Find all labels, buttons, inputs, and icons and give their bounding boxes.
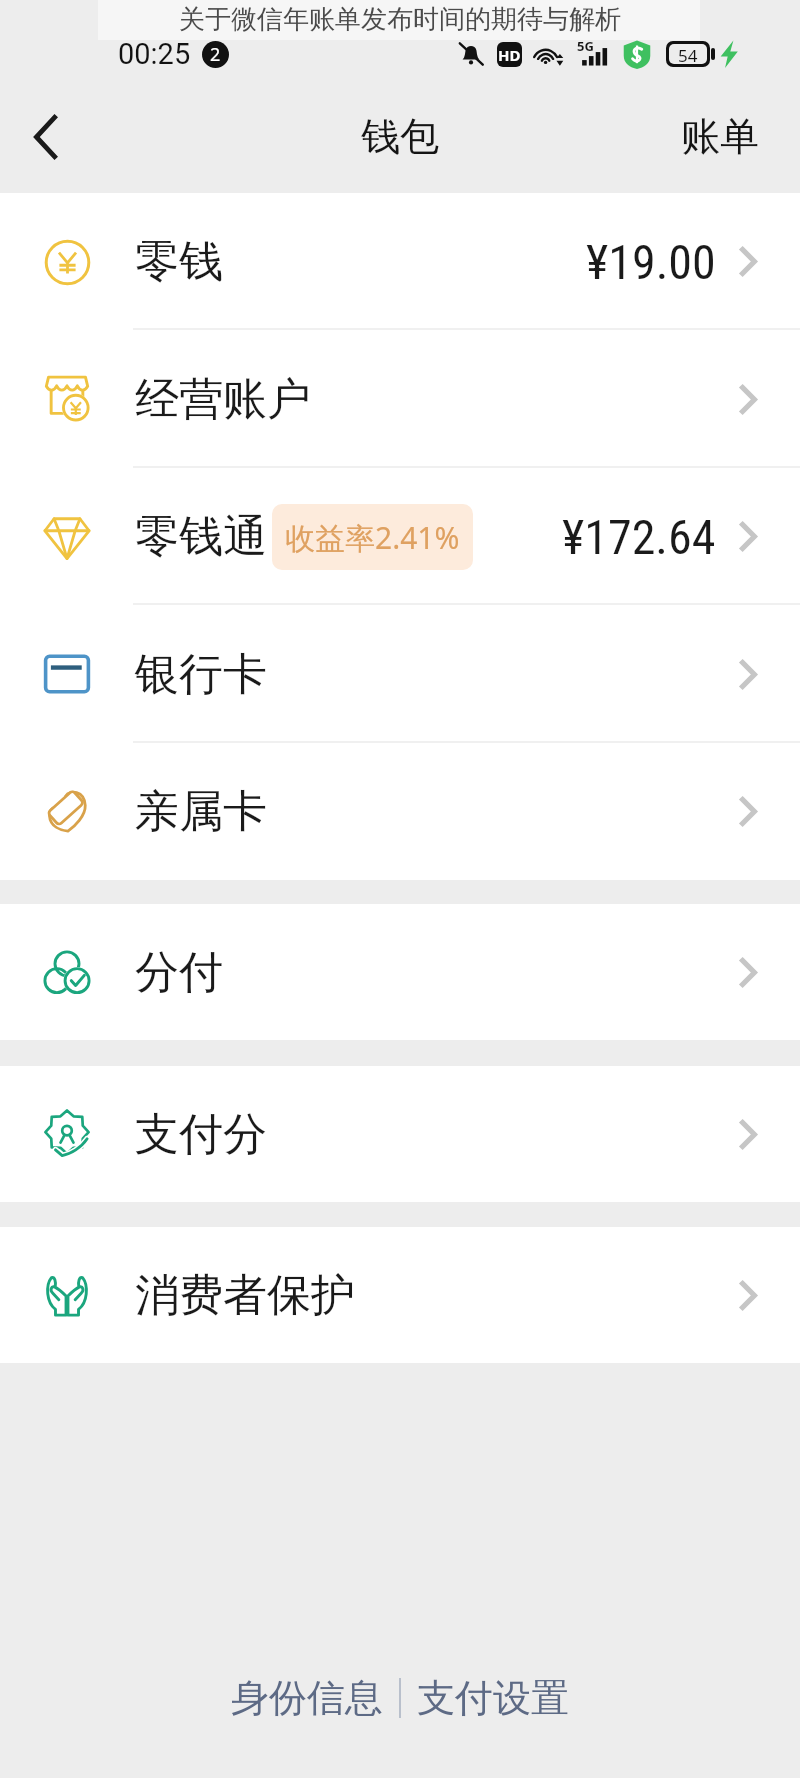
staticText: 支付设置 [417, 1674, 569, 1722]
button[interactable]: 零钱通 [0, 468, 800, 605]
button[interactable]: 支付分 [0, 1066, 800, 1202]
staticText: 账单 [681, 112, 759, 161]
staticText: 2 [210, 42, 221, 67]
staticText: 零钱 [135, 234, 223, 289]
staticText: 身份信息 [231, 1674, 383, 1722]
staticText: 54 [678, 44, 698, 64]
button[interactable]: 消费者保护 [0, 1227, 800, 1363]
staticText: 关于微信年账单发布时间的期待与解析 [179, 3, 621, 36]
button[interactable]: 账单 [657, 98, 800, 175]
staticText: 5G [577, 37, 594, 55]
button[interactable]: 零钱 [0, 193, 800, 330]
staticText: 亲属卡 [135, 784, 267, 839]
staticText: 收益率2.41% [285, 517, 460, 558]
staticText: HD [498, 45, 521, 65]
button[interactable]: Back [12, 104, 78, 170]
staticText: 银行卡 [135, 647, 267, 702]
button[interactable]: 银行卡 [0, 605, 800, 743]
staticText: 钱包 [361, 112, 439, 161]
button[interactable]: 支付设置 [401, 1664, 585, 1732]
staticText: 00:25 [118, 37, 191, 71]
staticText: ¥172.64 [562, 509, 716, 565]
button[interactable]: 经营账户 [0, 330, 800, 468]
staticText: 分付 [135, 945, 223, 1000]
staticText: ¥19.00 [586, 234, 716, 290]
staticText: 零钱通 [135, 509, 267, 564]
staticText: 经营账户 [135, 372, 311, 427]
button[interactable]: 身份信息 [215, 1664, 399, 1732]
staticText: 消费者保护 [135, 1268, 355, 1323]
button[interactable]: 亲属卡 [0, 743, 800, 880]
button[interactable]: 分付 [0, 904, 800, 1040]
staticText: 支付分 [135, 1107, 267, 1162]
